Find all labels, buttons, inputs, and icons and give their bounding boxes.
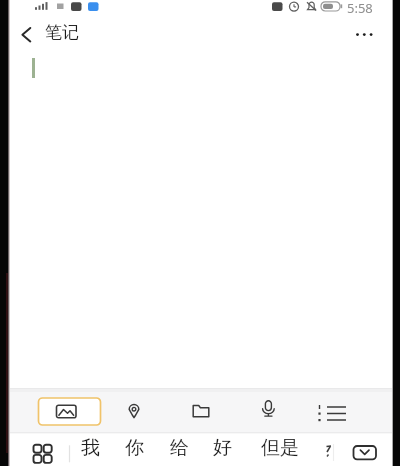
button[interactable] xyxy=(160,388,240,427)
button[interactable] xyxy=(320,388,400,427)
staticText: 我 xyxy=(81,436,100,460)
button[interactable] xyxy=(80,388,160,427)
button[interactable] xyxy=(354,22,380,48)
staticText: 5:58 xyxy=(347,0,373,13)
staticText: 给 xyxy=(170,436,189,460)
button[interactable] xyxy=(240,388,320,427)
staticText: 笔记 xyxy=(45,22,79,43)
button[interactable] xyxy=(345,427,400,466)
staticText: 但是 xyxy=(261,436,299,460)
button[interactable] xyxy=(69,427,345,466)
button[interactable] xyxy=(14,21,38,45)
button[interactable] xyxy=(0,388,80,427)
staticText: 你 xyxy=(125,436,144,460)
staticText: 好 xyxy=(213,436,232,460)
button[interactable] xyxy=(0,427,69,466)
